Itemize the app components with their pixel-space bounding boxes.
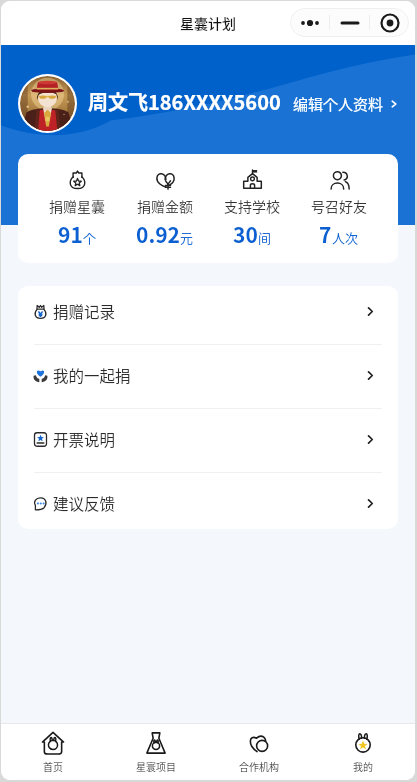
staticText: 支持学校 (224, 196, 280, 216)
staticText: 建议反馈 (53, 492, 116, 514)
staticText: 我的 (353, 759, 373, 773)
staticText: 间 (258, 228, 272, 247)
button[interactable]: 号召好友 (311, 169, 367, 249)
button[interactable]: 捐赠星囊 (49, 169, 105, 249)
button[interactable]: 首页 (1, 724, 104, 780)
staticText: 91 (58, 219, 83, 249)
button[interactable]: 建议反馈 (18, 477, 398, 529)
staticText: 开票说明 (53, 428, 116, 450)
button[interactable]: 合作机构 (207, 724, 311, 780)
staticText: 星寰项目 (136, 759, 176, 773)
staticText: 个 (83, 228, 97, 247)
staticText: 合作机构 (239, 759, 279, 773)
button[interactable]: 捐赠金额 (136, 169, 194, 249)
button[interactable]: 星寰项目 (104, 724, 207, 780)
staticText: 周文飞186XXXX5600 (88, 87, 281, 116)
staticText: 元 (180, 228, 194, 247)
button[interactable]: Avatar (20, 76, 75, 131)
staticText: 7 (319, 219, 332, 249)
staticText: 星囊计划 (180, 13, 236, 33)
button[interactable]: 编辑个人资料 (293, 91, 415, 115)
button[interactable]: 我的一起捐 (18, 349, 398, 401)
staticText: 首页 (43, 759, 63, 773)
staticText: 捐赠金额 (137, 196, 193, 216)
staticText: 我的一起捐 (53, 364, 131, 386)
button[interactable]: More (290, 8, 329, 37)
staticText: 号召好友 (311, 196, 367, 216)
staticText: 0.92 (136, 219, 180, 249)
staticText: 捐赠记录 (53, 300, 116, 322)
button[interactable]: 我的 (311, 724, 415, 780)
button[interactable]: 支持学校 (224, 169, 280, 249)
staticText: 编辑个人资料 (293, 93, 384, 115)
button[interactable]: 开票说明 (18, 413, 398, 465)
button[interactable]: 捐赠记录 (18, 286, 398, 337)
staticText: 捐赠星囊 (49, 196, 105, 216)
staticText: 30 (233, 219, 258, 249)
button[interactable]: Minimize (330, 8, 369, 37)
button[interactable]: Close (370, 8, 409, 37)
staticText: 人次 (332, 228, 359, 247)
